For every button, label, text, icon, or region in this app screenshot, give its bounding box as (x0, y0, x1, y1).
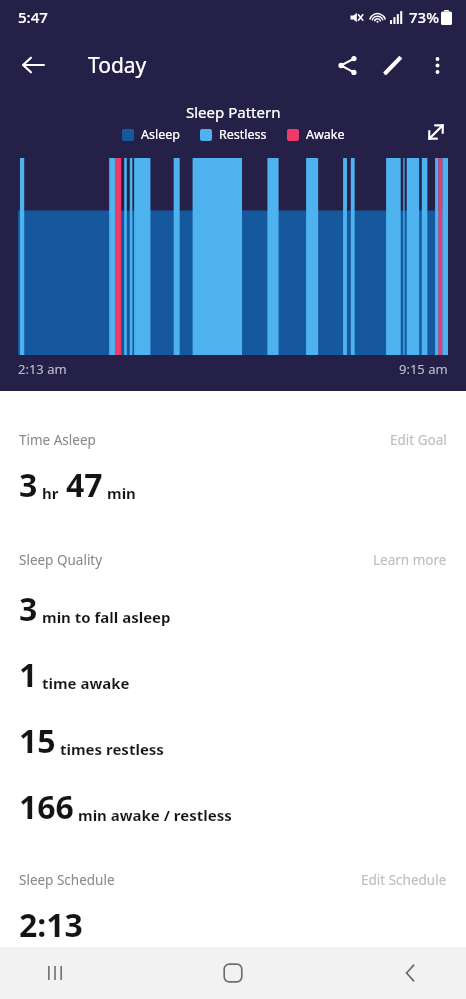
staticText: Today (88, 51, 147, 80)
staticText: Sleep Schedule (19, 871, 115, 889)
button[interactable]: Home (208, 948, 258, 998)
button[interactable]: More options (415, 43, 460, 88)
staticText: min to fall asleep (42, 607, 171, 627)
staticText: 73% (409, 7, 439, 27)
button[interactable]: Recent apps (30, 948, 80, 998)
button[interactable]: Edit Schedule (361, 871, 447, 889)
staticText: 3 (19, 587, 38, 631)
staticText: 1 (19, 653, 38, 697)
staticText: 2:13 (19, 903, 83, 947)
staticText: 2:13 am (18, 360, 67, 378)
staticText: Sleep Pattern (186, 102, 281, 122)
staticText: times restless (60, 739, 164, 759)
button[interactable]: Back (386, 948, 436, 998)
staticText: Restless (219, 126, 267, 143)
staticText: 3 (19, 463, 38, 507)
staticText: Awake (306, 126, 345, 143)
button[interactable]: Back (10, 42, 56, 88)
staticText: 166 (19, 785, 74, 829)
staticText: 5:47 (18, 7, 48, 27)
staticText: Edit Goal (390, 431, 447, 449)
button[interactable]: Edit Goal (390, 431, 447, 449)
button[interactable]: Edit (370, 43, 415, 88)
staticText: 47 (66, 463, 103, 507)
staticText: Time Asleep (19, 431, 96, 449)
staticText: 9:15 am (399, 360, 448, 378)
staticText: 15 (19, 719, 56, 763)
staticText: hr (42, 483, 59, 503)
button[interactable]: Learn more (373, 551, 447, 569)
staticText: Edit Schedule (361, 871, 447, 889)
staticText: Learn more (373, 551, 447, 569)
button[interactable]: Share (325, 43, 370, 88)
staticText: Asleep (141, 126, 180, 143)
staticText: min awake / restless (78, 805, 232, 825)
staticText: time awake (42, 673, 130, 693)
staticText: min (107, 483, 136, 503)
button[interactable]: Expand chart (416, 112, 456, 152)
staticText: Sleep Quality (19, 551, 103, 569)
